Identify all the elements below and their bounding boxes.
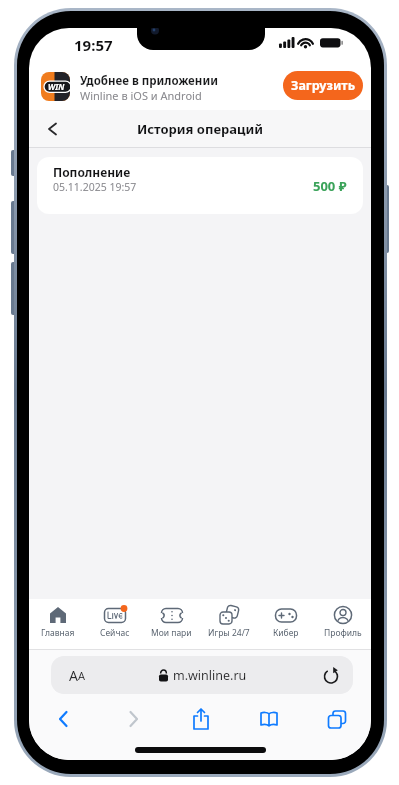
staticText: Пополнение	[53, 164, 131, 180]
button[interactable]: Главная	[29, 599, 86, 649]
button[interactable]: Кибер	[257, 599, 314, 649]
button[interactable]	[29, 702, 98, 736]
staticText: Кибер	[273, 627, 299, 639]
button[interactable]	[235, 702, 303, 736]
staticText: Загрузить	[291, 77, 356, 94]
button[interactable]	[167, 702, 235, 736]
button[interactable]: Мои пари	[143, 599, 200, 649]
staticText: Winline в iOS и Android	[80, 88, 202, 103]
staticText: Игры 24/7	[208, 627, 250, 639]
staticText: 05.11.2025 19:57	[53, 180, 137, 194]
button[interactable]	[37, 114, 67, 144]
button[interactable]: Профиль	[314, 599, 371, 649]
staticText: 500 ₽	[313, 177, 347, 195]
staticText: WIN	[48, 81, 65, 92]
staticText: m.winline.ru	[173, 667, 247, 684]
staticText: Главная	[41, 627, 75, 639]
button[interactable]: Игры 24/7	[200, 599, 257, 649]
button[interactable]: Сейчас	[86, 599, 143, 649]
button[interactable]	[98, 702, 167, 736]
staticText: A	[78, 668, 86, 683]
button[interactable]: Загрузить	[283, 71, 363, 100]
staticText: Удобнее в приложении	[80, 73, 218, 89]
staticText: Мои пари	[151, 627, 192, 639]
staticText: Профиль	[324, 627, 362, 639]
button[interactable]	[303, 702, 371, 736]
staticText: A	[69, 666, 78, 685]
staticText: История операций	[137, 120, 263, 138]
staticText: 19:57	[74, 35, 113, 55]
button[interactable]: A	[51, 656, 353, 694]
staticText: Сейчас	[100, 627, 130, 639]
button[interactable]: Пополнение	[37, 157, 363, 214]
